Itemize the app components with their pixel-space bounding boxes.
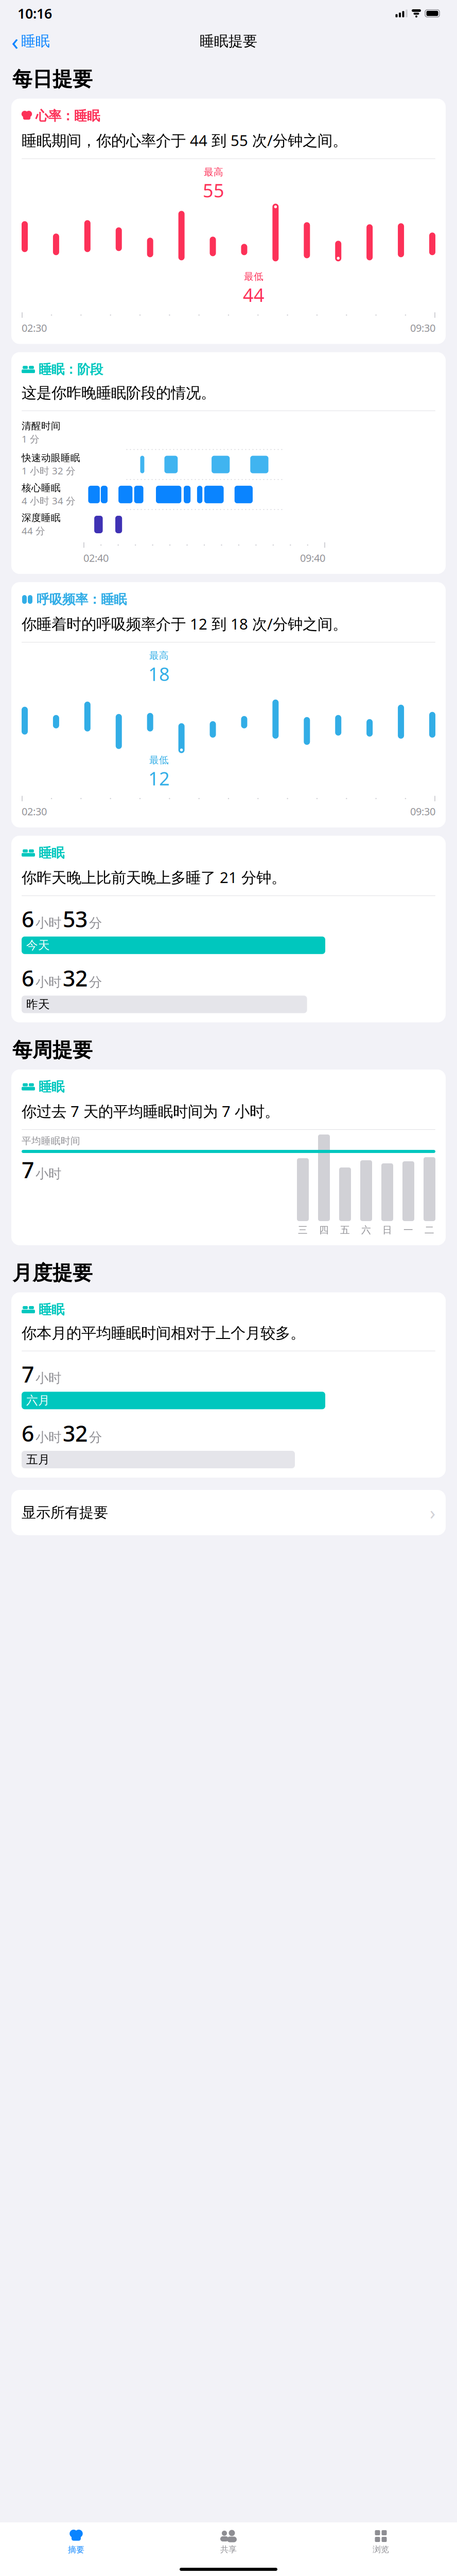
- staticText: 一: [403, 1224, 413, 1236]
- staticText: 六: [361, 1224, 371, 1236]
- staticText: 睡眠: [39, 845, 64, 861]
- staticText: 10:16: [17, 4, 52, 23]
- staticText: 1 小时 32 分: [22, 464, 76, 477]
- staticText: ‹: [11, 26, 19, 57]
- staticText: 32: [63, 1419, 87, 1448]
- staticText: 月度提要: [12, 1261, 93, 1285]
- staticText: 这是你昨晚睡眠阶段的情况。: [22, 384, 216, 402]
- staticText: 呼吸频率：睡眠: [37, 591, 127, 607]
- button[interactable]: 摘要: [0, 2527, 152, 2558]
- staticText: 12: [148, 766, 170, 791]
- staticText: 你本月的平均睡眠时间相对于上个月较多。: [22, 1324, 305, 1342]
- staticText: 睡眠: [39, 1302, 64, 1318]
- button[interactable]: 睡眠: [0, 1070, 457, 1245]
- staticText: 02:40: [83, 551, 109, 565]
- staticText: 09:30: [410, 804, 435, 818]
- staticText: 五: [340, 1224, 350, 1236]
- staticText: 平均睡眠时间: [22, 1135, 80, 1147]
- staticText: 睡眠: [39, 1079, 64, 1095]
- staticText: 44: [243, 282, 265, 307]
- staticText: 核心睡眠: [22, 482, 61, 494]
- staticText: 09:40: [300, 551, 325, 565]
- button[interactable]: 睡眠: [0, 1292, 457, 1478]
- staticText: 09:30: [410, 321, 435, 335]
- staticText: 分: [89, 915, 102, 931]
- staticText: 心率：睡眠: [36, 108, 100, 124]
- staticText: 深度睡眠: [22, 512, 61, 524]
- staticText: 18: [148, 662, 170, 686]
- staticText: 7: [22, 1359, 34, 1389]
- staticText: 32: [63, 963, 87, 993]
- button[interactable]: 睡眠：阶段: [0, 352, 457, 574]
- staticText: 02:30: [22, 321, 47, 335]
- staticText: 四: [319, 1224, 329, 1236]
- staticText: 昨天: [26, 997, 50, 1011]
- staticText: 7: [22, 1155, 34, 1184]
- button[interactable]: ‹: [9, 24, 52, 59]
- button[interactable]: 浏览: [305, 2527, 457, 2558]
- staticText: 日: [382, 1224, 392, 1236]
- staticText: 六月: [26, 1393, 50, 1408]
- staticText: 你过去 7 天的平均睡眠时间为 7 小时。: [22, 1101, 279, 1121]
- staticText: ›: [430, 1500, 435, 1525]
- staticText: 最低: [149, 754, 169, 766]
- staticText: 睡眠：阶段: [39, 361, 103, 377]
- staticText: 6: [22, 963, 34, 993]
- staticText: 最高: [149, 650, 169, 661]
- staticText: 6: [22, 1419, 34, 1448]
- staticText: 44 分: [22, 524, 45, 537]
- staticText: 摘要: [68, 2545, 84, 2555]
- button[interactable]: 共享: [152, 2527, 305, 2558]
- staticText: 每日提要: [12, 67, 93, 91]
- staticText: 快速动眼睡眠: [22, 452, 80, 464]
- staticText: 你睡着时的呼吸频率介于 12 到 18 次/分钟之间。: [22, 614, 347, 634]
- button[interactable]: 睡眠: [0, 836, 457, 1022]
- staticText: 睡眠提要: [200, 32, 257, 50]
- staticText: 53: [63, 904, 87, 933]
- staticText: 每周提要: [12, 1038, 93, 1062]
- staticText: 浏览: [373, 2544, 389, 2554]
- staticText: 1 分: [22, 432, 40, 445]
- button[interactable]: 心率：睡眠: [0, 99, 457, 344]
- staticText: 最低: [244, 271, 263, 282]
- staticText: 分: [89, 1429, 102, 1445]
- button[interactable]: 显示所有提要: [0, 1490, 457, 1535]
- staticText: 小时: [36, 974, 61, 990]
- staticText: 分: [89, 974, 102, 990]
- staticText: 三: [298, 1224, 308, 1236]
- staticText: 02:30: [22, 804, 47, 818]
- button[interactable]: 呼吸频率：睡眠: [0, 582, 457, 827]
- staticText: 你昨天晚上比前天晚上多睡了 21 分钟。: [22, 867, 286, 887]
- staticText: 五月: [26, 1452, 50, 1467]
- staticText: 小时: [36, 915, 61, 931]
- staticText: 小时: [36, 1166, 61, 1182]
- staticText: 小时: [36, 1429, 61, 1445]
- staticText: 55: [203, 178, 224, 203]
- staticText: 小时: [36, 1370, 61, 1386]
- staticText: 共享: [220, 2544, 237, 2554]
- staticText: 最高: [204, 166, 223, 178]
- staticText: 睡眠期间，你的心率介于 44 到 55 次/分钟之间。: [22, 130, 347, 150]
- staticText: 4 小时 34 分: [22, 494, 76, 507]
- staticText: 二: [425, 1224, 434, 1236]
- staticText: 清醒时间: [22, 420, 61, 432]
- staticText: 睡眠: [21, 32, 50, 50]
- staticText: 6: [22, 904, 34, 933]
- staticText: 今天: [26, 938, 50, 952]
- staticText: 显示所有提要: [22, 1504, 108, 1521]
